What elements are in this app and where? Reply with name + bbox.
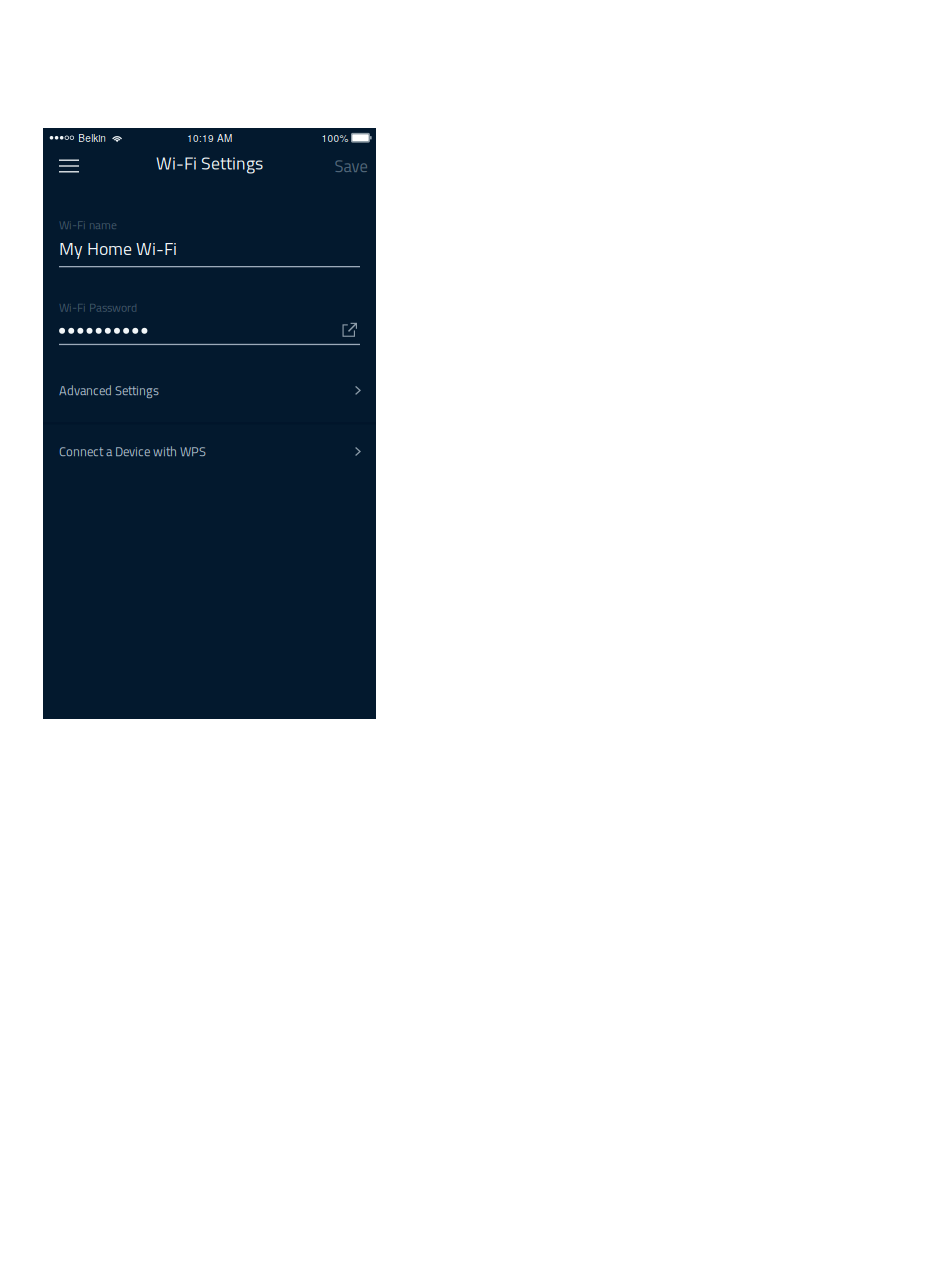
- button[interactable]: Advanced Settings: [43, 357, 376, 422]
- staticText: Connect a Device with WPS: [59, 442, 206, 461]
- staticText: Belkin: [78, 131, 106, 145]
- staticText: My Home Wi-Fi: [59, 235, 177, 262]
- staticText: Wi-Fi name: [59, 216, 117, 234]
- button[interactable]: Save: [323, 147, 367, 184]
- button[interactable]: Show password: [342, 323, 360, 339]
- staticText: 100%: [321, 131, 348, 145]
- button[interactable]: Connect a Device with WPS: [43, 424, 376, 486]
- staticText: 10:19 AM: [187, 131, 232, 145]
- staticText: Save: [334, 153, 367, 178]
- staticText: Wi-Fi Password: [59, 298, 137, 316]
- staticText: Advanced Settings: [59, 381, 159, 400]
- button[interactable]: Menu: [59, 147, 95, 184]
- staticText: Wi-Fi Settings: [156, 149, 263, 176]
